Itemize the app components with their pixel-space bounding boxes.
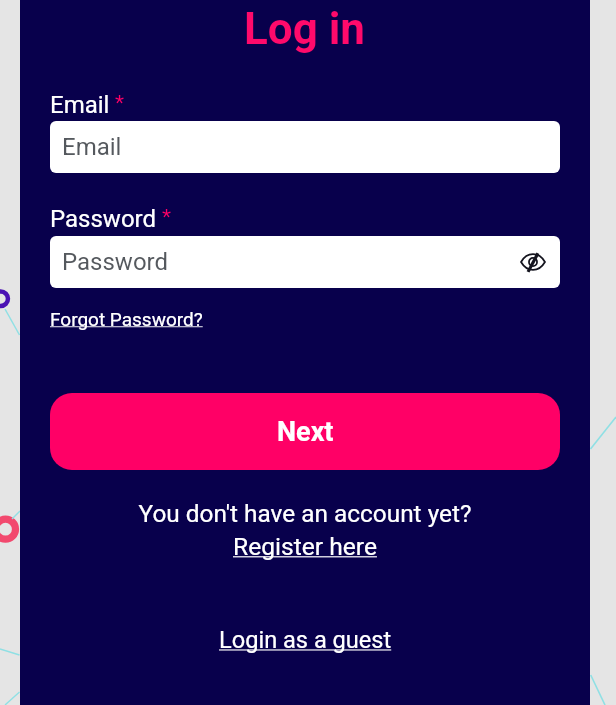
staticText: Register here: [233, 532, 377, 561]
button[interactable]: Password: [50, 236, 560, 288]
staticText: You don't have an account yet?: [20, 499, 590, 528]
staticText: *: [115, 91, 125, 116]
staticText: Email: [50, 91, 110, 119]
button[interactable]: Register here: [233, 532, 377, 561]
staticText: Email: [62, 133, 122, 161]
staticText: Log in: [244, 3, 366, 55]
staticText: Password: [62, 248, 169, 276]
staticText: *: [162, 205, 172, 230]
button[interactable]: Login as a guest: [219, 626, 392, 654]
staticText: Login as a guest: [219, 626, 392, 654]
staticText: Forgot Password?: [50, 308, 203, 330]
button[interactable]: Next: [50, 393, 560, 470]
staticText: Next: [277, 416, 334, 448]
staticText: Password: [50, 205, 157, 233]
button[interactable]: Forgot Password?: [50, 308, 203, 330]
button[interactable]: Show password: [520, 249, 546, 275]
button[interactable]: Email: [50, 121, 560, 173]
